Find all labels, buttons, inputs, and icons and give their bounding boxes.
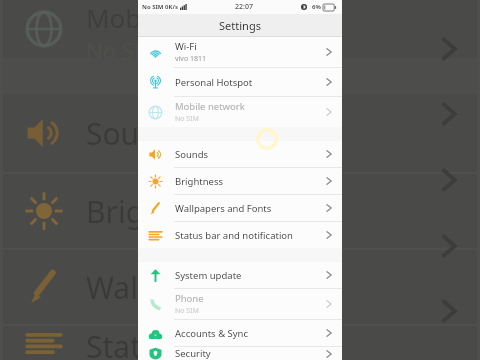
staticText: Personal Hotspot [175,76,253,89]
staticText: Wi-Fi [175,40,197,53]
staticText: Sounds [175,148,209,161]
button[interactable]: Wallpapers and Fonts [138,195,342,221]
staticText: System update [175,269,242,282]
staticText: Phone [175,292,204,305]
staticText: Settings [219,18,261,33]
button[interactable]: Brightness [138,168,342,194]
staticText: Mobile network [86,0,278,35]
button[interactable]: Security [138,347,342,360]
button[interactable]: Personal Hotspot [138,68,342,96]
staticText: 6% [312,3,321,11]
staticText: Mobile network [175,100,245,113]
staticText: Sounds [86,113,191,154]
button[interactable]: Wi-Fi [138,37,342,67]
button[interactable]: Status bar and notification [138,222,342,248]
staticText: Status bar and notification [175,229,293,242]
staticText: Security [175,347,211,360]
staticText: No SIM [175,306,199,316]
staticText: Wallp [86,267,165,308]
staticText: Statu [86,326,160,360]
button[interactable]: Sounds [138,141,342,167]
staticText: No SIM 0K/s [142,3,178,11]
staticText: Brightness [175,175,224,188]
staticText: vivo 1811 [175,54,206,64]
staticText: Accounts & Sync [175,327,249,340]
staticText: 22:07 [235,2,253,12]
button[interactable]: Phone [138,289,342,319]
staticText: Wallpapers and Fonts [175,202,272,215]
button[interactable]: System update [138,262,342,288]
staticText: No SIM [86,35,162,58]
staticText: Bright [86,191,174,232]
button[interactable]: Mobile network [138,97,342,127]
button[interactable]: Accounts & Sync [138,320,342,346]
staticText: No SIM [175,114,199,124]
